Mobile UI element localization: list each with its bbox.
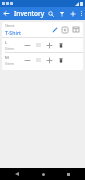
button[interactable]: Sleeve (2, 22, 83, 37)
button[interactable]: Edit (50, 22, 60, 37)
button[interactable]: Decrease quantity (22, 38, 33, 52)
button[interactable]: More options (78, 7, 85, 20)
staticText: L (5, 40, 8, 46)
button[interactable]: View table (70, 22, 81, 37)
staticText: Sleeve (5, 24, 15, 28)
button[interactable]: Delete (55, 53, 66, 67)
button[interactable]: L (2, 38, 83, 52)
button[interactable]: Increase quantity (44, 53, 55, 67)
staticText: 0 item (5, 62, 14, 66)
staticText: 0 item (5, 47, 14, 51)
button[interactable]: Home (35, 168, 51, 180)
button[interactable]: Add size (60, 22, 70, 37)
button[interactable]: Search (45, 7, 56, 20)
button[interactable]: Add item (67, 7, 78, 20)
button[interactable] (33, 53, 44, 67)
staticText: T-Shirt (5, 29, 22, 36)
button[interactable]: Increase quantity (44, 38, 55, 52)
button[interactable]: Back (9, 168, 25, 180)
staticText: M (5, 55, 9, 61)
button[interactable]: Navigate up (0, 7, 13, 20)
button[interactable]: Filter (56, 7, 67, 20)
staticText: Inventory (14, 9, 45, 18)
button[interactable]: M (2, 53, 83, 67)
button[interactable]: Decrease quantity (22, 53, 33, 67)
button[interactable] (33, 38, 44, 52)
button[interactable]: Recent apps (60, 168, 76, 180)
button[interactable]: Delete (55, 38, 66, 52)
